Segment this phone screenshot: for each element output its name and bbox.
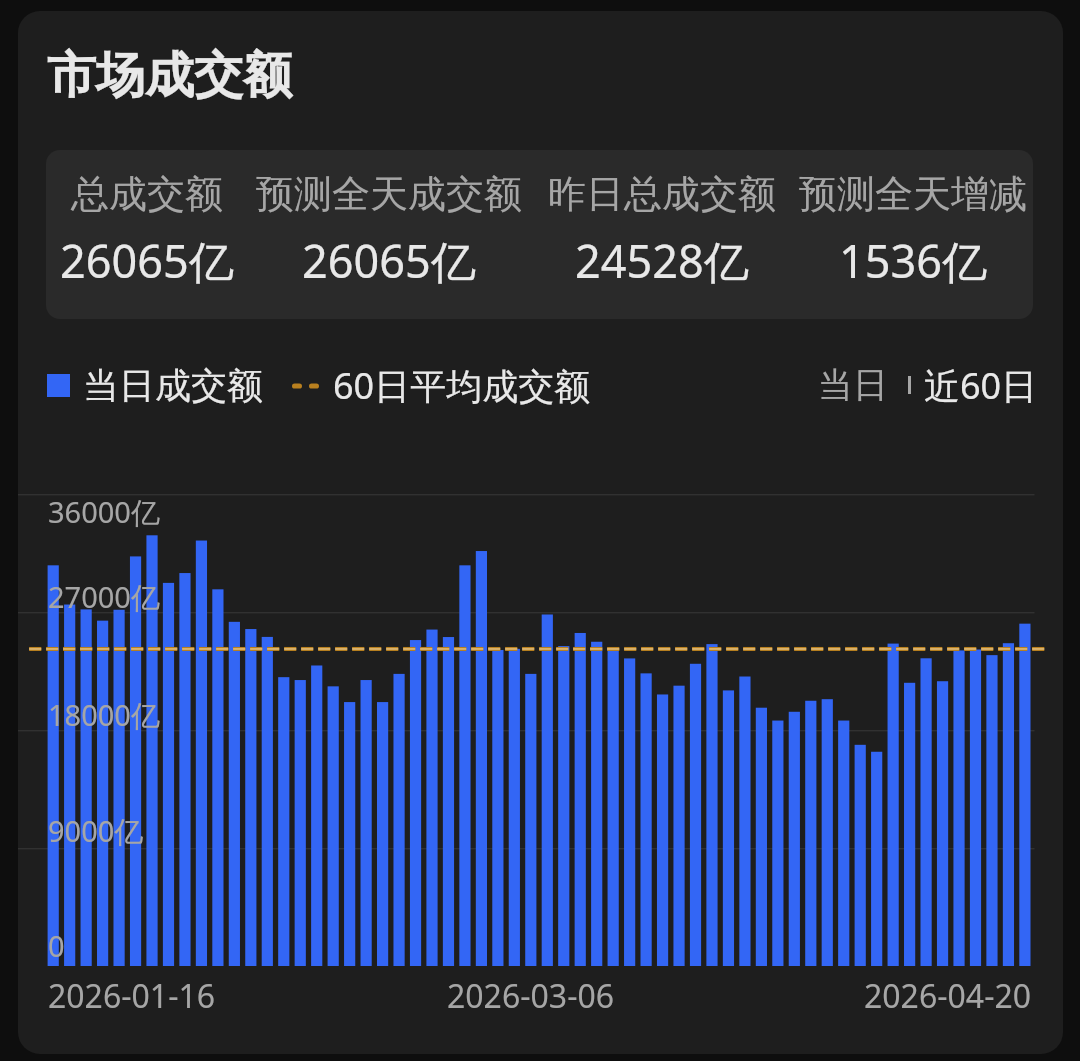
staticText: 18000亿 bbox=[48, 695, 160, 735]
button[interactable]: 当日 bbox=[818, 363, 888, 407]
staticText: 2026-03-06 bbox=[447, 974, 615, 1018]
staticText: 当日成交额 bbox=[83, 363, 263, 408]
staticText: 60日平均成交额 bbox=[333, 361, 591, 410]
staticText: 36000亿 bbox=[48, 492, 160, 532]
staticText: 0 bbox=[48, 926, 65, 965]
button[interactable]: 60日平均成交额 bbox=[292, 361, 591, 410]
staticText: 24528亿 bbox=[575, 230, 749, 291]
staticText: 1536亿 bbox=[839, 230, 987, 291]
staticText: 昨日总成交额 bbox=[548, 170, 776, 218]
staticText: 近60日 bbox=[924, 361, 1038, 410]
staticText: 总成交额 bbox=[71, 170, 223, 218]
staticText: 预测全天增减 bbox=[799, 170, 1027, 218]
staticText: 26065亿 bbox=[60, 230, 234, 291]
button[interactable]: 近60日 bbox=[924, 361, 1038, 410]
staticText: 26065亿 bbox=[302, 230, 476, 291]
staticText: 2026-04-20 bbox=[864, 974, 1032, 1018]
button[interactable]: 市场成交额柱状图 bbox=[18, 11, 1063, 1054]
staticText: 9000亿 bbox=[48, 811, 144, 851]
staticText: 预测全天成交额 bbox=[256, 170, 522, 218]
staticText: 27000亿 bbox=[48, 577, 160, 617]
staticText: 2026-01-16 bbox=[48, 974, 216, 1018]
button[interactable]: 当日成交额 bbox=[47, 363, 263, 408]
staticText: 当日 bbox=[818, 363, 888, 407]
staticText: 市场成交额 bbox=[47, 45, 292, 107]
button[interactable]: 总成交额 bbox=[46, 150, 1033, 319]
